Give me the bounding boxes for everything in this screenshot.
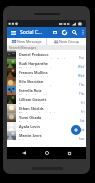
staticText: Daniel Probasco	[19, 52, 49, 57]
button[interactable]: Martin Ivers	[7, 131, 86, 140]
staticText: Lilliam Gossett	[19, 97, 47, 102]
button[interactable]: Refresh	[61, 29, 68, 36]
staticText: Fri	[81, 110, 85, 113]
staticText: Social C...	[20, 29, 43, 36]
staticText: Sounds good to me	[19, 121, 47, 122]
button[interactable]: Yumi Okada	[7, 113, 86, 122]
staticText: Frances Mullins	[19, 70, 48, 75]
staticText: Sun	[79, 137, 85, 140]
button[interactable]: Open navigation menu	[9, 29, 17, 37]
staticText: Thu	[79, 83, 85, 86]
staticText: Rudi Harpanthe	[19, 61, 49, 66]
button[interactable]: Ayala Levin	[7, 122, 86, 131]
button[interactable]: Recent apps	[63, 147, 75, 159]
staticText: Sat	[80, 119, 85, 122]
staticText: Fri	[81, 101, 85, 104]
staticText: Thanks again for your help	[19, 112, 57, 113]
button[interactable]: New Message	[7, 38, 46, 45]
staticText: Yumi Okada	[19, 115, 42, 120]
button[interactable]: Kilo Sheridan	[7, 77, 86, 86]
staticText: Let's connect soon	[19, 139, 46, 140]
button[interactable]: Home	[41, 147, 53, 159]
button[interactable]: Search Messages	[7, 45, 86, 50]
staticText: You are now connected on Social	[19, 58, 66, 59]
staticText: Great meeting you today	[19, 85, 55, 86]
staticText: Ethan Shields	[19, 106, 44, 111]
staticText: Search Messages	[9, 45, 37, 50]
staticText: of repositioning	[19, 130, 42, 131]
button[interactable]: Lilliam Gossett	[7, 95, 86, 104]
staticText: New Message	[17, 39, 42, 44]
staticText: New Group	[59, 39, 80, 44]
button[interactable]: Estrella Ruiz	[7, 86, 86, 95]
button[interactable]: Rudi Harpanthe	[7, 59, 86, 68]
button[interactable]: Search	[71, 29, 78, 36]
button[interactable]: Ethan Shields	[7, 104, 86, 113]
staticText: Martin Ivers	[19, 133, 42, 138]
button[interactable]: Compose	[51, 29, 58, 36]
button[interactable]: Back	[18, 147, 30, 159]
button[interactable]: Daniel Probasco	[7, 50, 86, 59]
staticText: Check out this article	[19, 94, 49, 95]
button[interactable]: Frances Mullins	[7, 68, 86, 77]
staticText: Thanks for the connection	[19, 67, 56, 68]
staticText: Sat	[80, 128, 85, 131]
staticText: Estrella Ruiz	[19, 88, 42, 93]
staticText: Tue	[79, 56, 85, 59]
button[interactable]: New message	[71, 125, 81, 135]
button[interactable]: More options	[80, 30, 85, 35]
staticText: Wed	[78, 74, 85, 77]
staticText: Looking forward to it	[19, 76, 49, 77]
button[interactable]: New Group	[47, 38, 86, 45]
staticText: Thu	[79, 92, 85, 95]
staticText: Wed	[78, 65, 85, 68]
staticText: Ayala Levin	[19, 124, 40, 129]
staticText: Kilo Sheridan	[19, 79, 44, 84]
staticText: See you next week	[19, 103, 46, 104]
